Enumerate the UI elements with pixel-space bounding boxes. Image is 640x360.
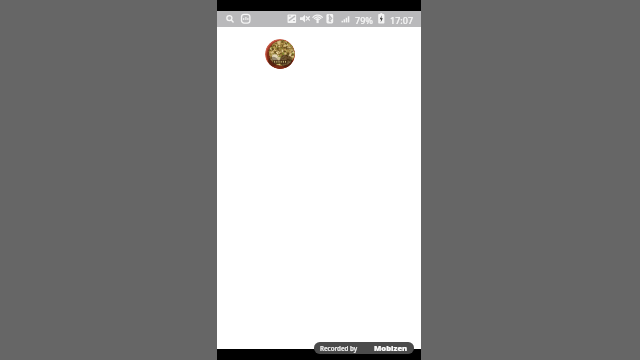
- button[interactable]: 79%: [217, 11, 421, 27]
- button[interactable]: Recorded by Mobizen: [314, 342, 414, 354]
- staticText: 79%: [355, 14, 373, 26]
- staticText: 17:07: [390, 14, 414, 26]
- staticText: Mobizen: [374, 343, 408, 353]
- staticText: Recorded by: [320, 344, 358, 352]
- button[interactable]: App icon: [265, 39, 295, 69]
